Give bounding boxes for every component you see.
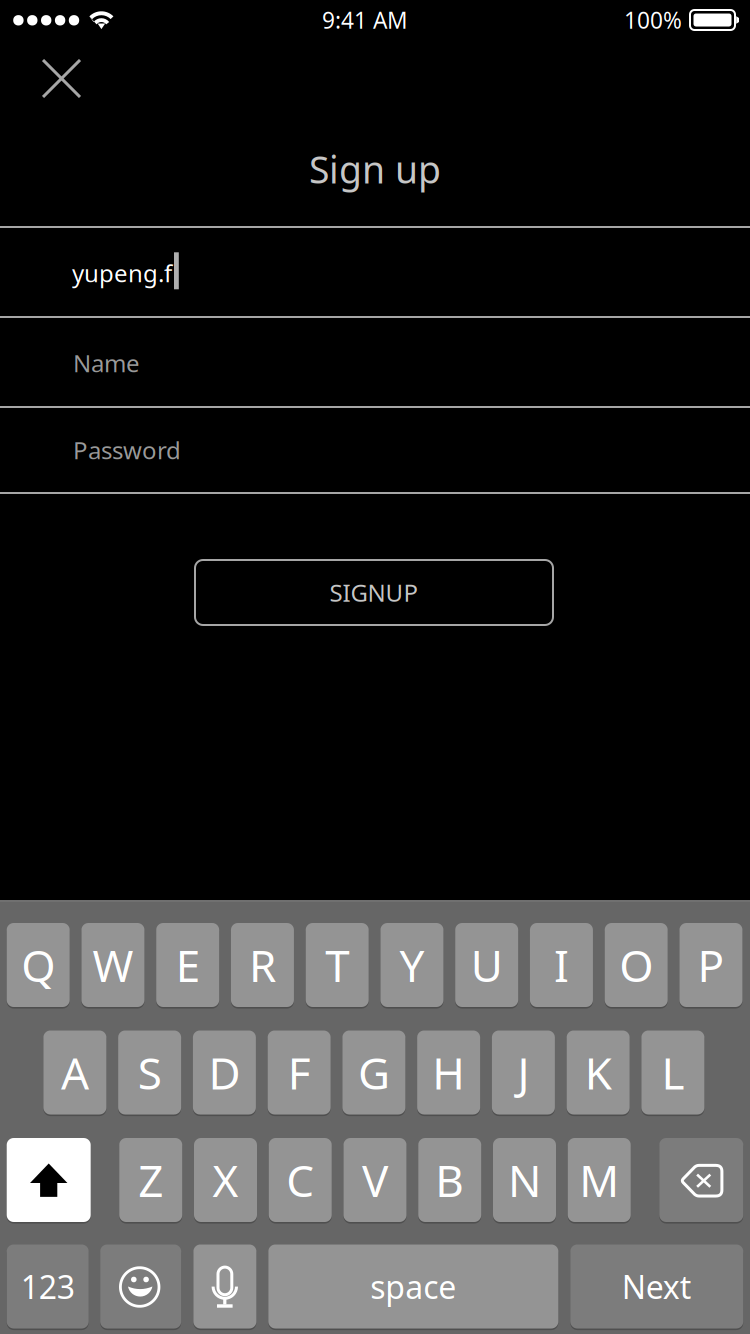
button[interactable]: J [492,1030,555,1116]
button[interactable]: space [268,1244,558,1330]
staticText: Name [73,347,140,379]
staticText: Y [399,936,424,994]
button[interactable]: Dictation [193,1244,256,1330]
button[interactable]: Next [570,1244,743,1330]
staticText: U [471,936,503,994]
staticText: space [370,1265,456,1308]
button[interactable]: Z [119,1138,182,1224]
staticText: O [619,936,653,994]
button[interactable]: Name [0,318,750,408]
button[interactable]: V [343,1138,406,1224]
staticText: A [61,1043,89,1102]
staticText: X [212,1151,238,1209]
button[interactable]: B [418,1138,481,1224]
button[interactable]: E [156,923,219,1009]
staticText: F [288,1043,311,1102]
staticText: K [585,1043,612,1102]
button[interactable]: S [118,1030,181,1116]
staticText: N [508,1151,541,1209]
button[interactable]: 123 [7,1244,89,1330]
staticText: 123 [21,1265,75,1308]
button[interactable]: C [269,1138,332,1224]
button[interactable]: N [493,1138,556,1224]
staticText: D [208,1043,240,1102]
button[interactable]: P [679,923,742,1009]
button[interactable]: X [194,1138,257,1224]
staticText: Q [21,936,55,994]
button[interactable]: SIGNUP [195,560,553,625]
staticText: V [362,1151,388,1209]
staticText: H [432,1043,465,1102]
button[interactable]: T [306,923,369,1009]
staticText: W [92,936,133,994]
button[interactable]: Close [30,47,93,110]
button[interactable]: D [193,1030,256,1116]
button[interactable]: G [342,1030,405,1116]
button[interactable]: A [43,1030,106,1116]
staticText: E [176,936,200,994]
button[interactable]: Emoji [100,1244,181,1330]
button[interactable]: F [268,1030,331,1116]
button[interactable]: U [455,923,518,1009]
staticText: B [435,1151,464,1209]
button[interactable]: K [567,1030,630,1116]
staticText: R [249,936,276,994]
button[interactable]: H [417,1030,480,1116]
button[interactable]: Delete [659,1138,743,1224]
button[interactable]: Password [0,408,750,494]
staticText: Sign up [309,144,441,194]
staticText: I [554,936,569,994]
staticText: C [286,1151,314,1209]
staticText: 100% [624,5,682,35]
staticText: 9:41 AM [322,5,408,35]
staticText: T [325,936,349,994]
staticText: M [579,1151,619,1209]
staticText: Next [622,1265,692,1308]
staticText: L [661,1043,684,1102]
button[interactable]: Shift [7,1138,91,1224]
button[interactable]: R [231,923,294,1009]
button[interactable]: Email, yupeng.f [0,228,750,318]
staticText: S [138,1043,162,1102]
staticText: Password [73,434,181,466]
staticText: yupeng.f [72,257,172,289]
button[interactable]: O [605,923,668,1009]
staticText: SIGNUP [329,577,418,608]
staticText: Z [138,1151,163,1209]
button[interactable]: L [641,1030,704,1116]
button[interactable]: Q [7,923,70,1009]
button[interactable]: I [530,923,593,1009]
staticText: P [697,936,724,994]
staticText: J [517,1043,529,1102]
button[interactable]: W [81,923,144,1009]
button[interactable]: M [568,1138,631,1224]
button[interactable]: Y [380,923,443,1009]
staticText: G [358,1043,390,1102]
